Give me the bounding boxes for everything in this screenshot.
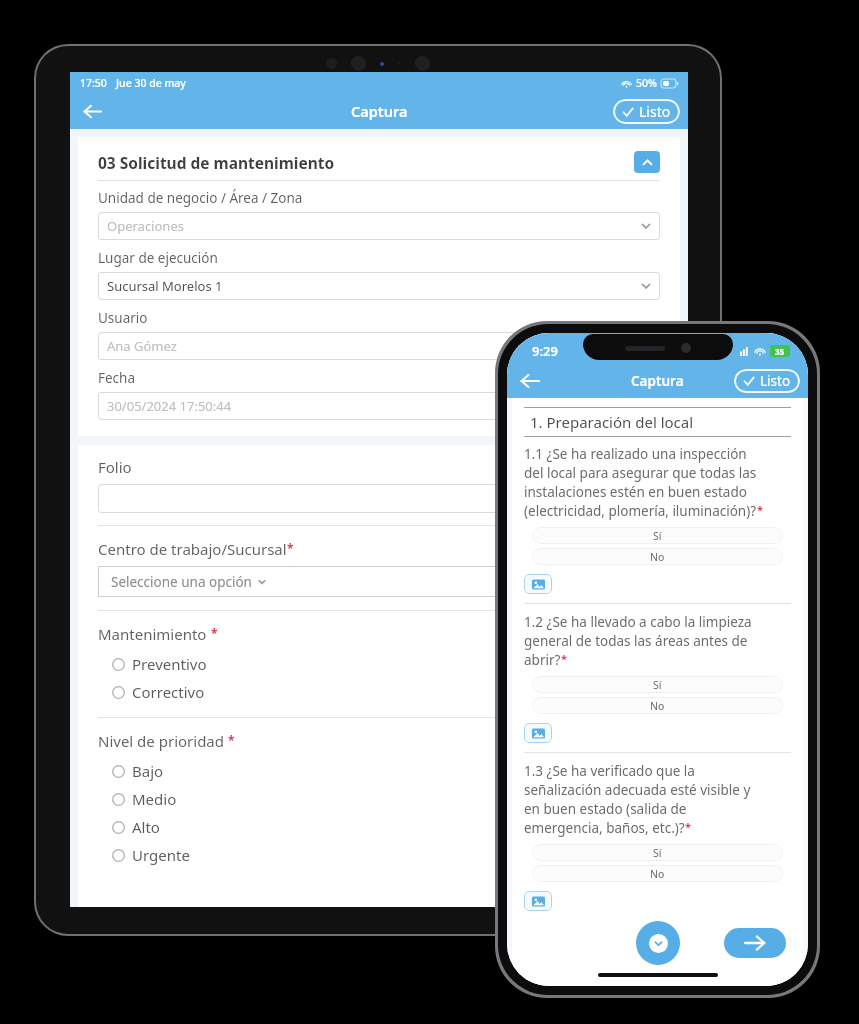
staticText: en buen estado (salida de (524, 800, 687, 818)
staticText: Fecha (98, 369, 136, 387)
button[interactable]: Operaciones (98, 212, 660, 240)
staticText: No (650, 699, 665, 713)
button[interactable]: Urgente (98, 843, 660, 867)
staticText: * (561, 651, 567, 666)
staticText: No (650, 867, 665, 881)
staticText: Listo (639, 102, 671, 121)
button[interactable]: Attach image (524, 574, 552, 594)
staticText: general de todas las áreas antes de (524, 632, 748, 650)
staticText: Alto (132, 817, 160, 837)
staticText: 17:50 (80, 76, 107, 90)
staticText: Sí (653, 529, 662, 543)
staticText: (electricidad, plomería, iluminación)? (524, 502, 757, 520)
staticText: 30/05/2024 17:50:44 (107, 397, 232, 415)
button[interactable]: Sucursal Morelos 1 (98, 272, 660, 300)
button[interactable]: No (532, 548, 783, 565)
staticText: Preventivo (132, 654, 207, 674)
button[interactable]: Next (724, 928, 786, 958)
staticText: Urgente (132, 845, 190, 865)
staticText: Sucursal Morelos 1 (107, 277, 223, 295)
button[interactable]: No (532, 865, 783, 882)
staticText: 03 Solicitud de mantenimiento (98, 152, 335, 173)
button[interactable]: Back (515, 366, 545, 396)
button[interactable]: Back (76, 95, 108, 127)
staticText: 50% (636, 76, 657, 90)
staticText: Listo (760, 372, 791, 390)
button[interactable]: Preventivo (98, 652, 660, 676)
button[interactable]: Sí (532, 676, 783, 693)
staticText: señalización adecuada esté visible y (524, 781, 751, 799)
button[interactable]: Listo (613, 99, 680, 124)
staticText: Captura (631, 372, 684, 390)
staticText: * (757, 502, 763, 517)
button[interactable]: Correctivo (98, 680, 660, 704)
staticText: Sí (653, 678, 662, 692)
button[interactable]: 30/05/2024 17:50:44 (98, 392, 660, 420)
staticText: 9:29 (532, 342, 558, 360)
staticText: Operaciones (107, 217, 184, 235)
staticText: del local para asegurar que todas las (524, 464, 757, 482)
button[interactable]: Medio (98, 787, 660, 811)
button[interactable]: Sí (532, 844, 783, 861)
staticText: Nivel de prioridad (98, 731, 228, 751)
button[interactable]: Attach image (524, 891, 552, 911)
staticText: 35 (775, 346, 785, 357)
staticText: instalaciones estén en buen estado (524, 483, 747, 501)
staticText: 1. Preparación del local (530, 412, 694, 432)
staticText: 1.2 ¿Se ha llevado a cabo la limpieza (524, 613, 752, 631)
staticText: No (650, 550, 665, 564)
button[interactable]: Sí (532, 527, 783, 544)
staticText: Unidad de negocio / Área / Zona (98, 189, 303, 207)
staticText: Correctivo (132, 682, 205, 702)
button[interactable]: Bajo (98, 759, 660, 783)
staticText: Mantenimiento (98, 624, 211, 644)
staticText: * (211, 625, 218, 641)
staticText: Sí (653, 846, 662, 860)
staticText: 1.1 ¿Se ha realizado una inspección (524, 445, 747, 463)
staticText: Captura (351, 101, 408, 121)
staticText: emergencia, baños, etc.)? (524, 819, 685, 837)
staticText: * (685, 819, 691, 834)
staticText: Centro de trabajo/Sucursal (98, 539, 287, 559)
staticText: Folio (98, 457, 132, 477)
button[interactable]: Alto (98, 815, 660, 839)
staticText: Ana Gómez (107, 337, 177, 355)
staticText: Bajo (132, 761, 164, 781)
button[interactable]: No (532, 697, 783, 714)
staticText: Usuario (98, 309, 148, 327)
button[interactable]: Ana Gómez (98, 332, 660, 360)
button[interactable]: Scroll down (636, 921, 680, 965)
button[interactable]: Collapse section (634, 151, 660, 173)
staticText: abrir? (524, 651, 561, 669)
staticText: Medio (132, 789, 177, 809)
button[interactable]: Listo (734, 369, 800, 393)
staticText: 1.3 ¿Se ha verificado que la (524, 762, 695, 780)
staticText: * (228, 732, 235, 748)
button[interactable]: Attach image (524, 723, 552, 743)
button[interactable]: Seleccione una opción (98, 566, 660, 597)
staticText: * (287, 540, 294, 556)
staticText: Jue 30 de may (116, 76, 186, 90)
button[interactable] (98, 484, 660, 513)
staticText: Seleccione una opción (111, 573, 252, 591)
staticText: Lugar de ejecución (98, 249, 218, 267)
